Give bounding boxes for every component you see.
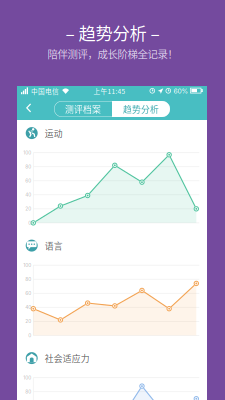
staticText: 100 — [23, 375, 31, 381]
staticText: 趋势分析 — [123, 103, 159, 115]
button[interactable]: 趋势分析 — [112, 101, 170, 117]
button[interactable]: 测评档案 — [54, 101, 112, 117]
staticText: 上午11:45 — [93, 86, 125, 96]
staticText: 20 — [25, 206, 31, 212]
staticText: 100 — [23, 150, 31, 156]
staticText: 陪伴测评，成长阶梯全记录！ — [47, 46, 177, 61]
staticText: 中国电信 — [31, 86, 59, 96]
staticText: 0 — [28, 220, 31, 226]
staticText: 80 — [25, 276, 31, 282]
staticText: 40 — [25, 192, 31, 198]
staticText: 运动 — [45, 127, 63, 139]
staticText: 80 — [25, 389, 31, 395]
staticText: 测评档案 — [65, 103, 101, 115]
button[interactable]: Back — [17, 96, 41, 120]
staticText: 语言 — [45, 239, 63, 252]
staticText: 60 — [25, 178, 31, 184]
staticText: – 趋势分析 – — [65, 20, 159, 45]
staticText: 社会适应力 — [45, 352, 90, 364]
staticText: 0 — [28, 332, 31, 338]
staticText: 20 — [25, 318, 31, 324]
staticText: 60% — [173, 87, 188, 95]
staticText: 100 — [23, 262, 31, 268]
staticText: 60 — [25, 290, 31, 296]
staticText: 80 — [25, 164, 31, 170]
staticText: 40 — [25, 304, 31, 310]
